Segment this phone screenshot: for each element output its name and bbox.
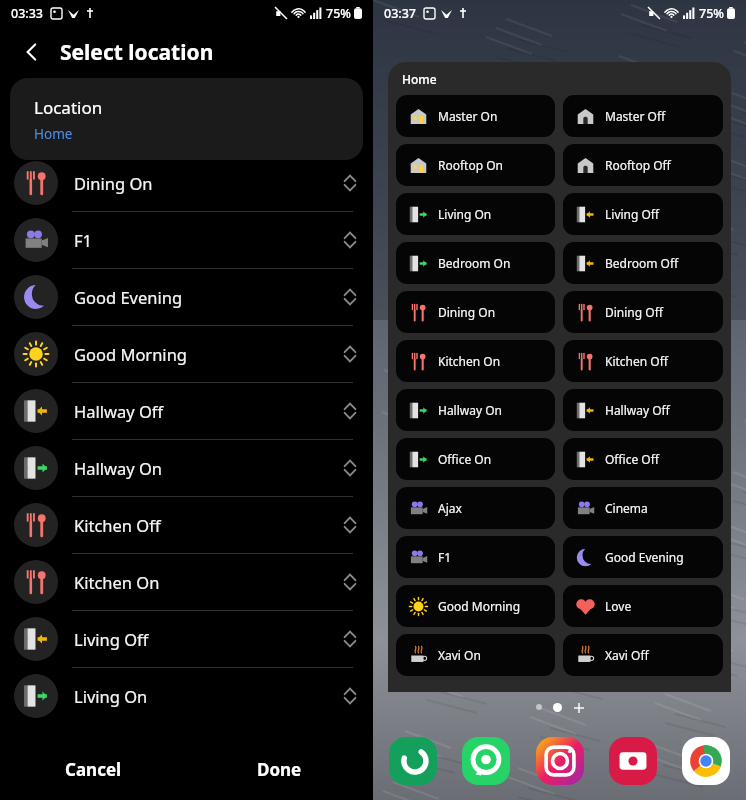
button[interactable]: Location [10, 78, 363, 160]
staticText: Rooftop On [438, 157, 503, 173]
button[interactable]: Living On [396, 193, 555, 235]
staticText: Good Morning [438, 598, 521, 614]
staticText: Hallway Off [605, 402, 670, 418]
button[interactable]: Office On [396, 438, 555, 480]
staticText: Rooftop Off [605, 157, 671, 173]
button[interactable]: Camera [607, 735, 659, 787]
staticText: Love [605, 598, 632, 614]
staticText: Living On [74, 685, 341, 707]
button[interactable]: Rooftop Off [563, 144, 723, 186]
staticText: Kitchen Off [74, 514, 341, 536]
button[interactable]: Living Off [0, 611, 373, 668]
staticText: Good Evening [605, 549, 684, 565]
button[interactable]: Phone [387, 735, 439, 787]
button[interactable]: F1 [396, 536, 555, 578]
staticText: F1 [438, 549, 452, 565]
button[interactable]: Bedroom Off [563, 242, 723, 284]
staticText: Dining Off [605, 304, 663, 320]
button[interactable]: Master Off [563, 95, 723, 137]
staticText: Xavi Off [605, 647, 649, 663]
staticText: 03:33 [11, 5, 44, 22]
staticText: Cancel [65, 758, 122, 781]
button[interactable]: Instagram [534, 735, 586, 787]
staticText: Bedroom Off [605, 255, 679, 271]
staticText: 75% [326, 5, 351, 22]
staticText: Cinema [605, 500, 648, 516]
button[interactable]: Living On [0, 668, 373, 724]
button[interactable]: Kitchen On [0, 554, 373, 611]
staticText: Hallway Off [74, 400, 341, 422]
button[interactable]: Kitchen Off [563, 340, 723, 382]
staticText: Good Evening [74, 286, 341, 308]
staticText: Select location [60, 38, 214, 67]
button[interactable]: Xavi On [396, 634, 555, 676]
button[interactable]: Good Evening [563, 536, 723, 578]
staticText: Dining On [438, 304, 496, 320]
button[interactable]: Chrome [680, 735, 732, 787]
button[interactable]: Hallway Off [0, 383, 373, 440]
button[interactable]: Office Off [563, 438, 723, 480]
staticText: Master Off [605, 108, 666, 124]
staticText: Master On [438, 108, 498, 124]
button[interactable]: Hallway On [0, 440, 373, 497]
staticText: Office On [438, 451, 492, 467]
button[interactable]: Good Morning [396, 585, 555, 627]
staticText: Dining On [74, 172, 341, 194]
staticText: Location [34, 96, 103, 119]
button[interactable]: Rooftop On [396, 144, 555, 186]
staticText: Kitchen On [74, 571, 341, 593]
staticText: Kitchen Off [605, 353, 668, 369]
staticText: Kitchen On [438, 353, 501, 369]
staticText: Hallway On [438, 402, 503, 418]
button[interactable]: Good Evening [0, 269, 373, 326]
staticText: Home [402, 71, 437, 87]
button[interactable]: Dining On [0, 155, 373, 212]
button[interactable]: Bedroom On [396, 242, 555, 284]
button[interactable]: Living Off [563, 193, 723, 235]
button[interactable]: Xavi Off [563, 634, 723, 676]
button[interactable]: Cinema [563, 487, 723, 529]
staticText: Done [257, 758, 302, 781]
button[interactable]: Hallway On [396, 389, 555, 431]
button[interactable]: Kitchen On [396, 340, 555, 382]
staticText: Hallway On [74, 457, 341, 479]
staticText: Office Off [605, 451, 660, 467]
button[interactable]: F1 [0, 212, 373, 269]
staticText: Home [34, 125, 73, 143]
button[interactable]: Love [563, 585, 723, 627]
button[interactable]: WhatsApp [460, 735, 512, 787]
button[interactable]: Dining Off [563, 291, 723, 333]
button[interactable]: Kitchen Off [0, 497, 373, 554]
staticText: Living On [438, 206, 492, 222]
button[interactable]: Dining On [396, 291, 555, 333]
staticText: F1 [74, 229, 341, 251]
button[interactable]: Back [12, 32, 52, 72]
staticText: Bedroom On [438, 255, 511, 271]
button[interactable]: Master On [396, 95, 555, 137]
staticText: Living Off [74, 628, 341, 650]
staticText: 75% [699, 5, 724, 22]
staticText: Ajax [438, 500, 462, 516]
staticText: Xavi On [438, 647, 481, 663]
button[interactable]: Hallway Off [563, 389, 723, 431]
staticText: 03:37 [384, 5, 417, 22]
button[interactable]: Ajax [396, 487, 555, 529]
button[interactable]: Cancel [0, 738, 186, 800]
button[interactable]: Add page [573, 702, 584, 713]
button[interactable]: Good Morning [0, 326, 373, 383]
staticText: Living Off [605, 206, 660, 222]
button[interactable]: Done [186, 738, 373, 800]
staticText: Good Morning [74, 343, 341, 365]
